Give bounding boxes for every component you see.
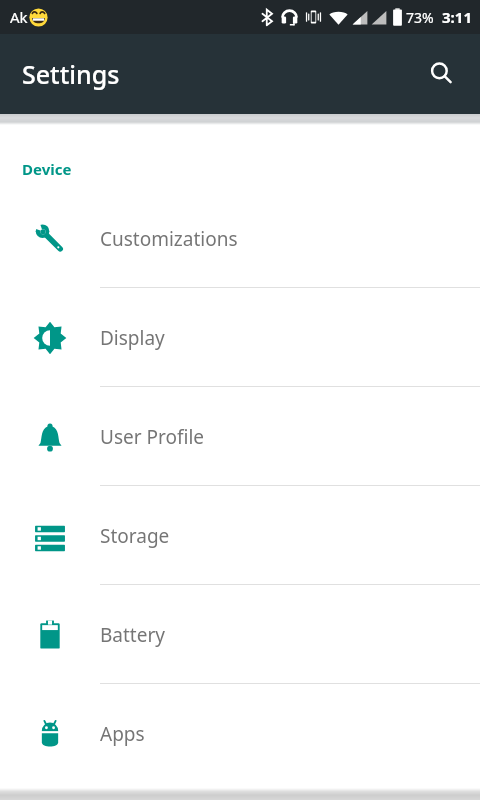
staticText: Display (100, 325, 165, 351)
button[interactable]: Display (0, 288, 480, 387)
button[interactable]: Search (418, 50, 466, 98)
button[interactable]: User Profile (0, 387, 480, 486)
button[interactable]: Battery (0, 585, 480, 684)
staticText: Settings (22, 57, 120, 91)
button[interactable]: Storage (0, 486, 480, 585)
staticText: Device (22, 159, 72, 179)
staticText: Ak (10, 7, 28, 27)
button[interactable]: Apps (0, 684, 480, 783)
staticText: 3:11 (442, 7, 472, 27)
staticText: User Profile (100, 424, 205, 450)
staticText: Apps (100, 721, 145, 747)
staticText: 73% (406, 8, 434, 27)
button[interactable]: Customizations (0, 189, 480, 288)
staticText: Customizations (100, 226, 238, 252)
staticText: Storage (100, 523, 170, 549)
staticText: Battery (100, 622, 165, 648)
